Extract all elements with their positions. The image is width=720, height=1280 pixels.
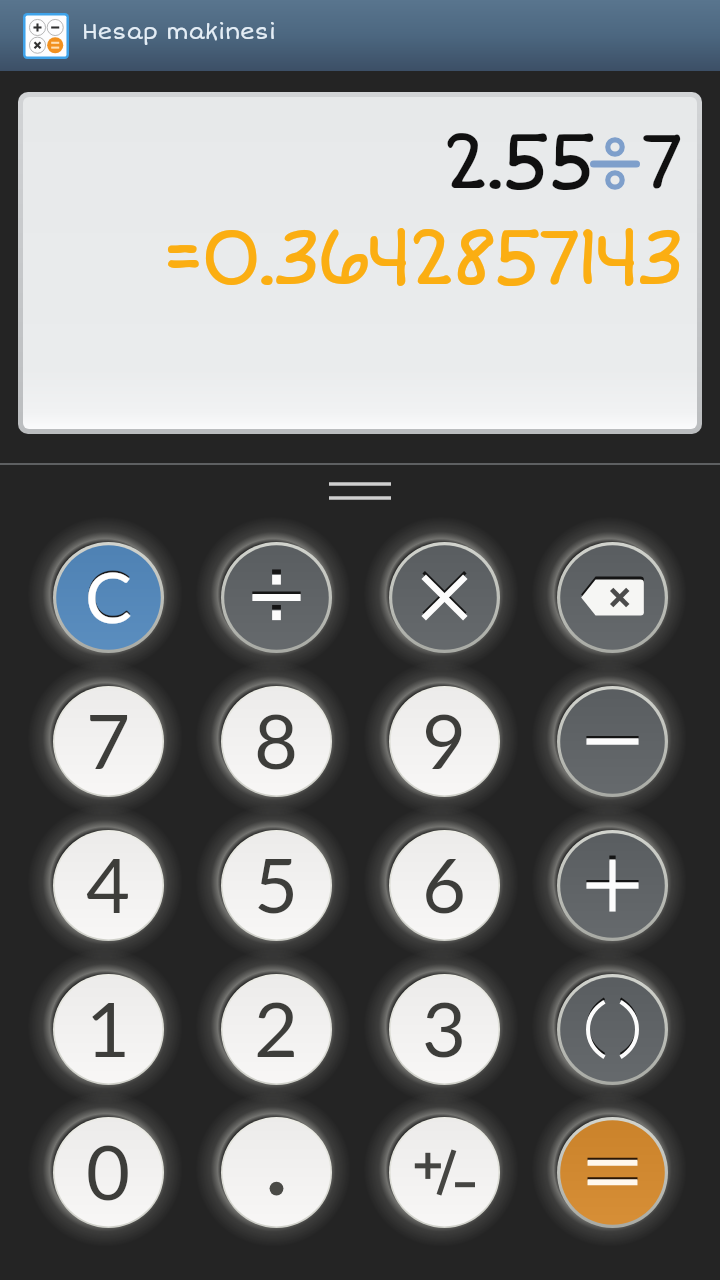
button[interactable]: 1 [31,952,186,1107]
button[interactable]: 0 [31,1095,186,1250]
staticText: C [85,552,132,636]
staticText: 3 [422,982,467,1073]
staticText: 7 [639,111,685,212]
button[interactable]: 4 [31,808,186,963]
button[interactable]: 3 [367,952,522,1107]
button[interactable]: 5 [199,808,354,963]
button[interactable]: Plus minus sign [367,1095,522,1250]
button[interactable]: Decimal point [199,1095,354,1250]
button[interactable]: Plus [535,808,690,963]
staticText: C [85,554,132,638]
staticText: 6 [422,838,467,929]
staticText: 4 [86,838,131,929]
staticText: 5 [254,838,299,929]
staticText: 9 [422,694,467,785]
staticText: 2.55 [440,111,591,212]
button[interactable]: 6 [367,808,522,963]
button[interactable]: 7 [31,664,186,819]
staticText: 2 [254,982,299,1073]
button[interactable]: Divide [199,520,354,675]
button[interactable]: Clear [31,520,186,675]
button[interactable]: Equals [535,1095,690,1250]
staticText: 1 [86,982,131,1073]
button[interactable]: Backspace [535,520,690,675]
staticText: Hesap makinesi [82,18,276,45]
button[interactable]: 9 [367,664,522,819]
button[interactable]: 8 [199,664,354,819]
button[interactable]: 2 [199,952,354,1107]
staticText: =0.3642857143 [23,207,679,308]
staticText: 8 [254,694,299,785]
button[interactable]: Parentheses [535,952,690,1107]
button[interactable]: Multiply [367,520,522,675]
button[interactable]: Minus [535,664,690,819]
staticText: 7 [86,694,131,785]
staticText: 0 [86,1125,131,1216]
